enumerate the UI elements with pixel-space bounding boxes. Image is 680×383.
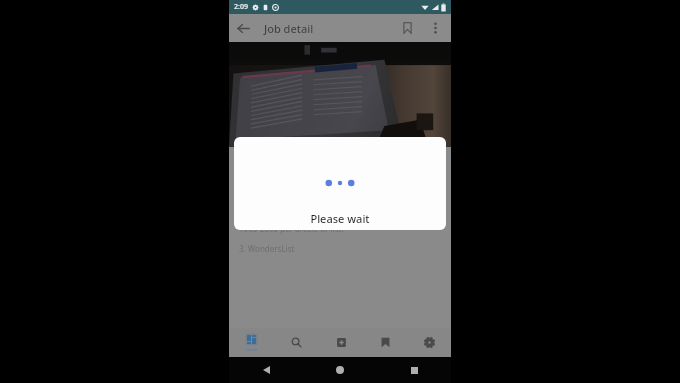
staticText: 100$-200$ per article or list. bbox=[239, 223, 344, 234]
button[interactable]: Saved bbox=[363, 328, 407, 357]
button[interactable]: Back bbox=[229, 14, 257, 42]
button[interactable]: Bookmark bbox=[393, 14, 421, 42]
button[interactable]: Search bbox=[274, 328, 319, 357]
button[interactable]: Home bbox=[229, 328, 274, 357]
button[interactable]: Back bbox=[229, 357, 303, 383]
button[interactable]: Recent apps bbox=[377, 357, 451, 383]
staticText: 2:09 bbox=[234, 2, 248, 12]
button[interactable]: Settings bbox=[407, 328, 451, 357]
button[interactable]: Home bbox=[303, 357, 377, 383]
button[interactable]: More options bbox=[421, 14, 449, 42]
button[interactable]: Please wait bbox=[234, 137, 446, 230]
staticText: Job detail bbox=[264, 21, 314, 36]
staticText: 3. WondersList bbox=[239, 243, 295, 254]
button[interactable]: Add bbox=[319, 328, 363, 357]
staticText: Home bbox=[246, 347, 258, 352]
staticText: Please wait bbox=[310, 211, 370, 226]
